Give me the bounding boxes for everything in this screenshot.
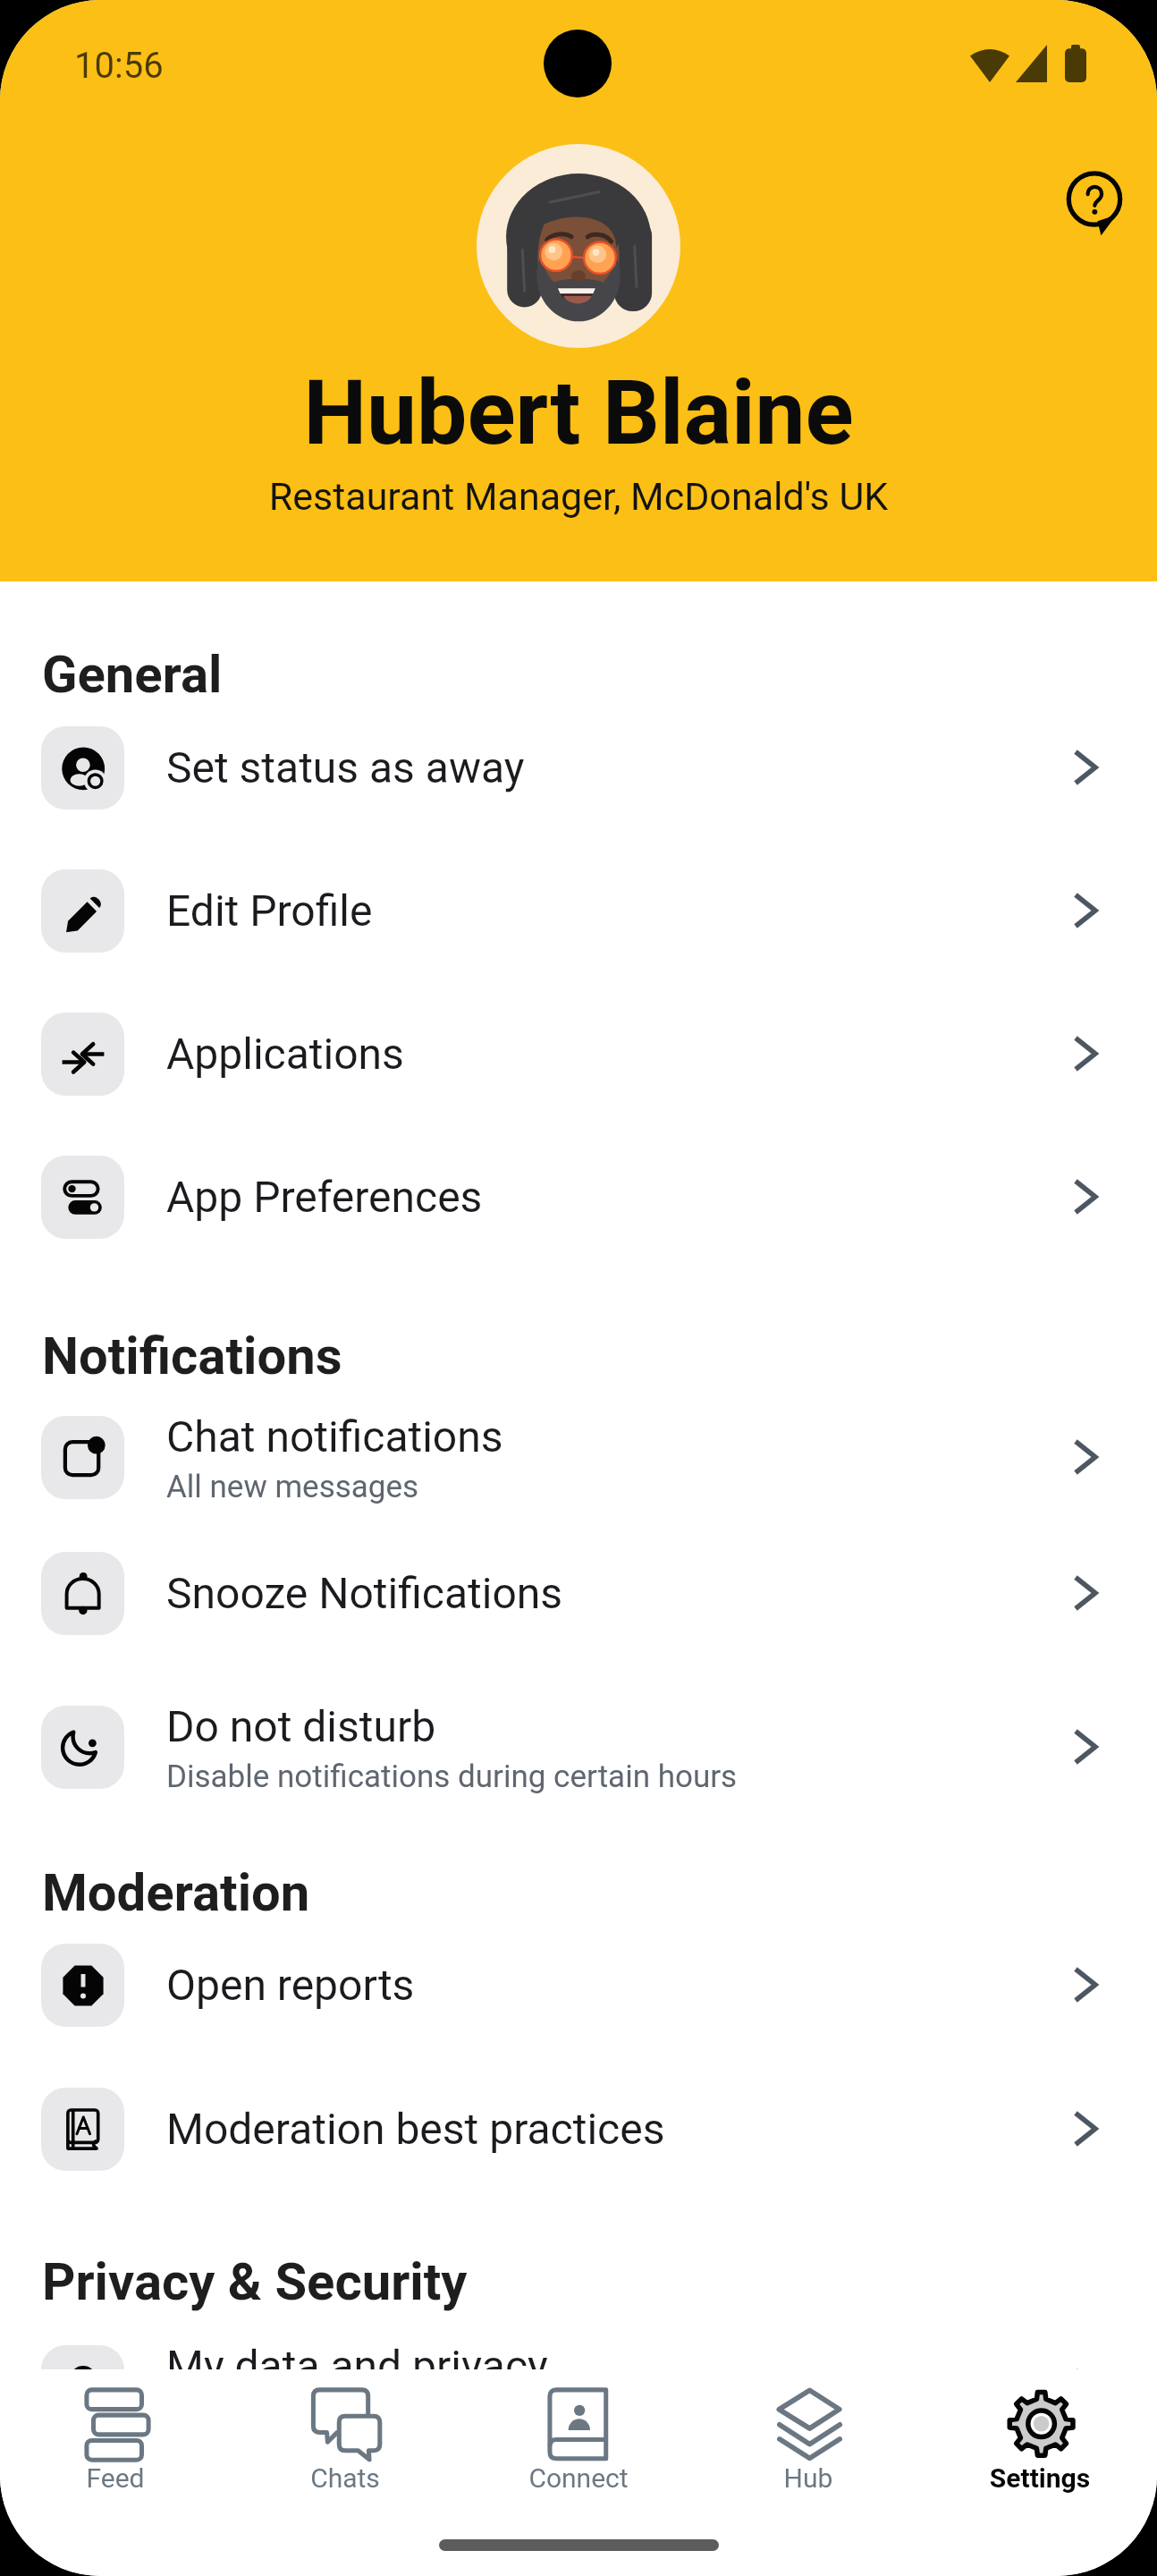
button[interactable]: Connect xyxy=(471,2369,686,2526)
staticText: Notifications xyxy=(42,1326,342,1386)
staticText: Chats xyxy=(238,2462,452,2494)
staticText: Moderation xyxy=(42,1862,310,1923)
button[interactable]: Hub xyxy=(701,2369,916,2526)
button[interactable]: Moderation best practices xyxy=(0,2062,1157,2196)
staticText: Do not disturb xyxy=(166,1701,436,1751)
staticText: Restaurant Manager, McDonald's UK xyxy=(0,474,1157,519)
staticText: Disable notifications during certain hou… xyxy=(166,1758,738,1795)
staticText: Set status as away xyxy=(166,742,525,792)
button[interactable]: Edit Profile xyxy=(0,843,1157,978)
button[interactable]: Feed xyxy=(8,2369,223,2526)
button[interactable]: Do not disturb xyxy=(0,1680,1157,1814)
staticText: Open reports xyxy=(166,1960,415,2010)
staticText: General xyxy=(42,644,223,705)
staticText: Hub xyxy=(701,2462,916,2494)
button[interactable]: Settings xyxy=(933,2369,1147,2526)
button[interactable]: Snooze Notifications xyxy=(0,1526,1157,1660)
staticText: Settings xyxy=(933,2462,1147,2494)
staticText: Privacy & Security xyxy=(42,2251,468,2312)
button[interactable]: Chats xyxy=(238,2369,452,2526)
button[interactable]: Chat notifications xyxy=(0,1390,1157,1524)
staticText: Edit Profile xyxy=(166,885,373,936)
staticText: Applications xyxy=(166,1029,404,1079)
button[interactable]: Help xyxy=(1039,147,1150,258)
staticText: Snooze Notifications xyxy=(166,1568,563,1618)
staticText: All new messages xyxy=(166,1469,419,1505)
button[interactable]: Applications xyxy=(0,987,1157,1121)
staticText: My data and privacy xyxy=(166,2341,548,2391)
button[interactable]: Open reports xyxy=(0,1918,1157,2052)
staticText: 10:56 xyxy=(74,45,164,87)
button[interactable]: Set status as away xyxy=(0,700,1157,835)
staticText: Connect xyxy=(471,2462,686,2494)
staticText: Chat notifications xyxy=(166,1411,503,1462)
button[interactable]: My data and privacy xyxy=(0,2319,1157,2453)
staticText: Moderation best practices xyxy=(166,2104,665,2154)
button[interactable]: App Preferences xyxy=(0,1130,1157,1264)
staticText: Feed xyxy=(8,2462,223,2494)
staticText: App Preferences xyxy=(166,1172,483,1222)
staticText: Hubert Blaine xyxy=(0,360,1157,465)
